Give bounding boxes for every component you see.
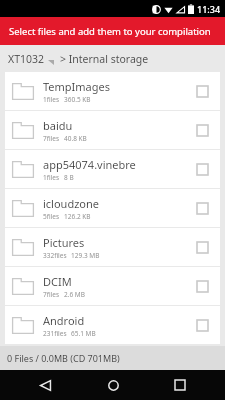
- staticText: TempImages: [43, 79, 111, 94]
- button[interactable]: Select DCIM: [191, 275, 213, 297]
- staticText: 1files: [43, 173, 60, 182]
- staticText: 7files: [43, 134, 60, 143]
- staticText: 360.5 KB: [64, 95, 91, 104]
- button[interactable]: Home: [91, 370, 135, 400]
- staticText: XT1032: [8, 52, 45, 66]
- button[interactable]: Select app54074.vinebre: [191, 158, 213, 180]
- button[interactable]: Select icloudzone: [191, 197, 213, 219]
- staticText: 7files: [43, 290, 60, 299]
- staticText: 8 B: [64, 173, 74, 182]
- staticText: 1files: [43, 95, 60, 104]
- button[interactable]: baidu: [5, 111, 220, 149]
- staticText: 2.6 MB: [64, 290, 85, 299]
- button[interactable]: XT1032: [6, 50, 56, 68]
- staticText: 129.3 MB: [71, 251, 100, 260]
- staticText: 332files: [43, 251, 67, 260]
- staticText: app54074.vinebre: [43, 157, 136, 172]
- button[interactable]: Back: [23, 370, 67, 400]
- staticText: Select files and add them to your compil…: [9, 25, 211, 38]
- staticText: icloudzone: [43, 196, 100, 211]
- staticText: Pictures: [43, 235, 85, 250]
- button[interactable]: icloudzone: [5, 189, 220, 227]
- staticText: Android: [43, 313, 85, 328]
- button[interactable]: Select TempImages: [191, 80, 213, 102]
- button[interactable]: Recent apps: [158, 370, 202, 400]
- staticText: 40.8 KB: [64, 134, 87, 143]
- button[interactable]: app54074.vinebre: [5, 150, 220, 188]
- staticText: 0 Files / 0.0MB (CD 701MB): [7, 352, 120, 364]
- button[interactable]: Pictures: [5, 228, 220, 266]
- staticText: DCIM: [43, 274, 72, 289]
- button[interactable]: Android: [5, 306, 220, 344]
- staticText: baidu: [43, 118, 73, 133]
- staticText: 11:34: [197, 3, 221, 15]
- staticText: 5files: [43, 212, 60, 221]
- button[interactable]: TempImages: [5, 72, 220, 110]
- button[interactable]: > Internal storage: [60, 52, 149, 66]
- staticText: 65.1 MB: [71, 329, 96, 338]
- staticText: 126.2 KB: [64, 212, 91, 221]
- button[interactable]: Select Pictures: [191, 236, 213, 258]
- button[interactable]: DCIM: [5, 267, 220, 305]
- staticText: 231files: [43, 329, 67, 338]
- button[interactable]: Select baidu: [191, 119, 213, 141]
- button[interactable]: Select Android: [191, 314, 213, 336]
